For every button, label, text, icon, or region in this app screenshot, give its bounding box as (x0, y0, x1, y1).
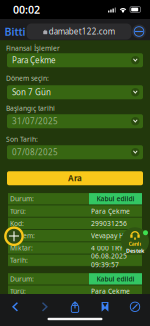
button[interactable]: 07/08/2025 (7, 145, 143, 159)
button[interactable]: Back (0, 296, 30, 318)
button[interactable]: Bookmarks (90, 296, 120, 318)
staticText: Kabul edildi (96, 194, 134, 203)
staticText: 4 000 TRY (91, 243, 123, 252)
staticText: Yöntem: (10, 231, 35, 240)
button[interactable]: Share (60, 296, 90, 318)
staticText: Türü: (10, 287, 26, 296)
staticText: 00:02 (13, 2, 40, 17)
staticText: Türü: (10, 207, 26, 215)
button[interactable]: Add (4, 226, 24, 246)
staticText: Kabul edildi (96, 274, 134, 283)
staticText: damabet122.com (49, 26, 115, 37)
button[interactable]: Para Çekme (7, 53, 143, 67)
staticText: Para Çekme (91, 287, 130, 296)
staticText: 31/07/2025 (12, 116, 58, 126)
button[interactable]: Son 7 Gün (7, 85, 143, 99)
staticText: Miktar: (10, 243, 33, 252)
button[interactable]: Page menu (131, 24, 146, 39)
staticText: 06.08.2025 09:39:57 (91, 251, 127, 269)
staticText: Ara (68, 173, 82, 183)
staticText: Kod: (10, 219, 24, 228)
staticText: 07/08/2025 (12, 147, 58, 157)
staticText: 299031256 (91, 219, 127, 228)
staticText: Durum: (10, 194, 34, 203)
button[interactable]: Canlı Destek (121, 227, 149, 255)
staticText: Bitti (4, 24, 25, 39)
staticText: Canlı (128, 240, 141, 247)
staticText: Para Çekme (91, 207, 130, 215)
staticText: Destek (126, 247, 144, 254)
staticText: Başlangıç tarihi (6, 104, 55, 113)
staticText: Durum: (10, 274, 34, 283)
staticText: Tarih: (10, 256, 28, 265)
staticText: Para Çekme (12, 55, 56, 65)
staticText: Son Tarih: (6, 135, 38, 144)
button[interactable]: Ara (7, 171, 143, 185)
button[interactable]: Bitti (0, 22, 26, 40)
staticText: Finansal İşlemler (6, 44, 60, 53)
button[interactable]: Forward (30, 296, 60, 318)
button[interactable]: Tabs (120, 296, 150, 318)
staticText: Vevapay H (91, 231, 124, 240)
button[interactable]: 31/07/2025 (7, 114, 143, 128)
staticText: Dönem seçin: (6, 74, 49, 83)
staticText: Son 7 Gün (12, 87, 51, 97)
